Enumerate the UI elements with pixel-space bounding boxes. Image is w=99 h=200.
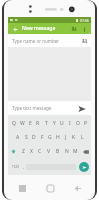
- staticText: P: [84, 120, 88, 127]
- staticText: X: [30, 148, 33, 155]
- button[interactable]: More options: [80, 25, 88, 33]
- staticText: A: [16, 134, 20, 141]
- staticText: J: [65, 134, 67, 141]
- button[interactable]: I: [66, 120, 74, 127]
- staticText: H: [56, 134, 60, 141]
- staticText: C: [38, 148, 42, 155]
- button[interactable]: Send: [76, 103, 87, 114]
- button[interactable]: G: [46, 134, 54, 141]
- staticText: ?123: [12, 165, 19, 169]
- button[interactable]: Back: [68, 179, 86, 197]
- button[interactable]: Recent apps: [13, 179, 31, 197]
- staticText: T: [45, 120, 48, 127]
- staticText: S: [25, 134, 28, 141]
- button[interactable]: Home: [41, 179, 59, 197]
- button[interactable]: ?123: [10, 165, 21, 169]
- button[interactable]: Send message: [79, 162, 89, 172]
- staticText: Q: [12, 120, 16, 127]
- button[interactable]: W: [18, 120, 26, 127]
- staticText: Type name or number: [12, 38, 60, 44]
- button[interactable]: Navigate up: [11, 25, 19, 33]
- staticText: Type text message: [12, 105, 52, 111]
- staticText: ,: [23, 164, 25, 169]
- staticText: D: [32, 134, 36, 141]
- staticText: N: [65, 148, 69, 155]
- staticText: 07:56: [80, 18, 89, 23]
- button[interactable]: E: [26, 120, 34, 127]
- button[interactable]: F: [38, 134, 46, 141]
- button[interactable]: V: [44, 148, 53, 155]
- button[interactable]: Add recipient: [69, 24, 78, 33]
- staticText: Z: [22, 148, 25, 155]
- button[interactable]: A: [13, 134, 22, 141]
- button[interactable]: X: [27, 148, 35, 155]
- staticText: E: [29, 120, 32, 127]
- button[interactable]: K: [70, 134, 78, 141]
- staticText: L: [81, 134, 84, 141]
- button[interactable]: Z: [19, 148, 27, 155]
- staticText: Y: [53, 120, 56, 127]
- button[interactable]: Pick contact: [79, 36, 88, 45]
- button[interactable]: B: [53, 148, 62, 155]
- button[interactable]: Type text message: [12, 105, 76, 111]
- button[interactable]: D: [30, 134, 38, 141]
- button[interactable]: C: [35, 148, 44, 155]
- staticText: B: [56, 148, 60, 155]
- staticText: O: [76, 120, 80, 127]
- button[interactable]: P: [82, 120, 90, 127]
- button[interactable]: J: [62, 134, 70, 141]
- button[interactable]: T: [42, 120, 50, 127]
- button[interactable]: O: [74, 120, 82, 127]
- staticText: U: [60, 120, 64, 127]
- button[interactable]: Y: [50, 120, 58, 127]
- button[interactable]: Shift: [8, 149, 19, 154]
- button[interactable]: S: [22, 134, 30, 141]
- staticText: G: [48, 134, 52, 141]
- staticText: R: [36, 120, 40, 127]
- button[interactable]: M: [71, 148, 80, 155]
- button[interactable]: U: [58, 120, 66, 127]
- button[interactable]: Backspace: [80, 149, 91, 155]
- staticText: K: [72, 134, 76, 141]
- button[interactable]: ,: [21, 164, 26, 169]
- button[interactable]: L: [78, 134, 86, 141]
- staticText: M: [73, 148, 78, 155]
- button[interactable]: R: [34, 120, 42, 127]
- staticText: F: [41, 134, 44, 141]
- button[interactable]: Type name or number: [8, 34, 91, 47]
- button[interactable]: Q: [9, 120, 18, 127]
- staticText: I: [69, 120, 71, 127]
- staticText: V: [47, 148, 51, 155]
- button[interactable]: N: [62, 148, 71, 155]
- staticText: W: [20, 120, 25, 127]
- staticText: New message: [22, 25, 56, 32]
- button[interactable]: H: [54, 134, 62, 141]
